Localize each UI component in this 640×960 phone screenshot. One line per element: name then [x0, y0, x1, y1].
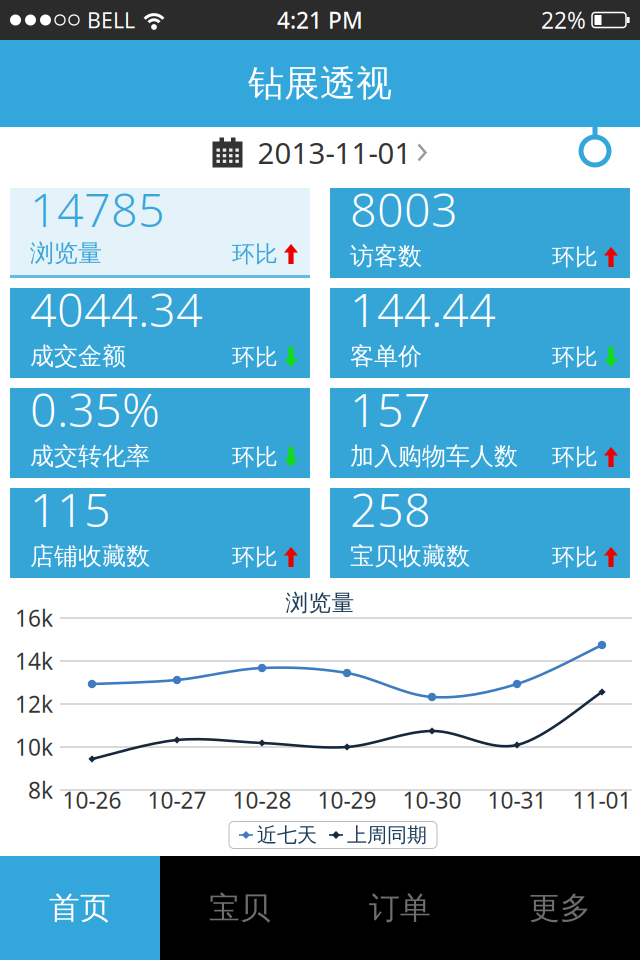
button[interactable]: 更多 [480, 856, 640, 960]
staticText: 22% [541, 5, 586, 35]
staticText: 成交转化率 [30, 441, 150, 471]
button[interactable]: 157 [330, 388, 630, 478]
staticText: 10k [15, 732, 53, 762]
staticText: 钻展透视 [248, 61, 392, 106]
staticText: 近七天 [257, 823, 317, 847]
staticText: 宝贝 [209, 889, 271, 927]
staticText: 环比 [232, 240, 278, 268]
staticText: 成交金额 [30, 341, 126, 371]
staticText: 环比 [552, 543, 598, 571]
button[interactable]: 0.35% [10, 388, 310, 478]
staticText: 115 [30, 478, 111, 540]
staticText: 4044.34 [30, 278, 203, 340]
staticText: 客单价 [350, 341, 422, 371]
staticText: 环比 [232, 443, 278, 471]
staticText: 浏览量 [30, 238, 102, 268]
staticText: 0.35% [30, 378, 160, 440]
staticText: 14k [15, 646, 53, 676]
staticText: BELL [87, 6, 135, 34]
staticText: 258 [350, 478, 431, 540]
staticText: 环比 [552, 443, 598, 471]
staticText: 10-28 [232, 785, 291, 815]
staticText: 10-29 [317, 785, 376, 815]
button[interactable]: 8003 [330, 188, 630, 278]
button[interactable]: 258 [330, 488, 630, 578]
button[interactable]: 14785 [10, 188, 310, 278]
staticText: 订单 [369, 889, 431, 927]
staticText: 宝贝收藏数 [350, 541, 470, 571]
staticText: 首页 [49, 889, 111, 927]
button[interactable]: 4044.34 [10, 288, 310, 378]
staticText: 10-27 [147, 785, 206, 815]
staticText: 144.44 [350, 278, 496, 340]
button[interactable]: 144.44 [330, 288, 630, 378]
staticText: 上周同期 [347, 823, 427, 847]
staticText: 访客数 [350, 241, 422, 271]
staticText: 8003 [350, 178, 458, 240]
staticText: 11-01 [572, 785, 631, 815]
staticText: 12k [15, 689, 53, 719]
staticText: 4:21 PM [277, 5, 363, 35]
staticText: 14785 [30, 178, 165, 240]
staticText: 157 [350, 378, 431, 440]
staticText: 10-31 [487, 785, 546, 815]
staticText: 环比 [232, 543, 278, 571]
staticText: 2013-11-01 [257, 133, 411, 172]
staticText: 16k [15, 603, 53, 633]
staticText: 店铺收藏数 [30, 541, 150, 571]
staticText: 环比 [232, 343, 278, 371]
staticText: 10-26 [62, 785, 121, 815]
button[interactable]: 订单 [320, 856, 480, 960]
staticText: 环比 [552, 243, 598, 271]
staticText: 环比 [552, 343, 598, 371]
staticText: 更多 [529, 889, 591, 927]
button[interactable]: Refresh [581, 127, 609, 165]
staticText: 10-30 [402, 785, 461, 815]
button[interactable]: 首页 [0, 856, 160, 960]
staticText: 加入购物车人数 [350, 441, 518, 471]
button[interactable]: 115 [10, 488, 310, 578]
button[interactable]: 2013-11-01 [212, 138, 427, 177]
button[interactable]: 宝贝 [160, 856, 320, 960]
staticText: 浏览量 [285, 589, 354, 617]
staticText: 8k [28, 775, 53, 805]
